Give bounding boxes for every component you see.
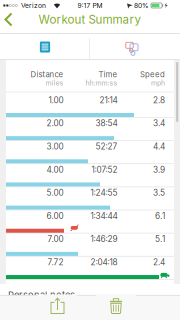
staticText: miles [45,79,63,87]
staticText: Personal notes [8,290,75,301]
staticText: 4.4 [153,141,165,151]
staticText: Verizon [21,1,46,10]
staticText: 7.00 [47,234,63,244]
staticText: 7.72 [47,257,63,267]
button[interactable]: Splits [1,34,89,59]
staticText: 3.5 [153,188,165,198]
staticText: 80% [134,1,149,10]
staticText: 5.00 [46,188,63,198]
staticText: Time [98,70,117,79]
staticText: 2:04:18 [90,257,117,267]
staticText: mph [151,79,165,87]
staticText: 3.9 [153,165,165,175]
staticText: 6.1 [155,211,165,221]
staticText: 21:14 [99,95,117,105]
staticText: 3.4 [153,118,165,128]
button[interactable]: Back [0,7,24,31]
staticText: 1:24:55 [90,188,117,198]
staticText: 1:34:44 [90,211,117,221]
button[interactable]: Compare workouts [90,34,180,59]
staticText: 2.4 [153,257,165,267]
staticText: 1:46:29 [90,234,117,244]
staticText: 52:27 [95,141,117,151]
staticText: 3.00 [46,141,63,151]
staticText: 4.00 [46,165,63,175]
staticText: Distance [30,70,63,79]
staticText: 1:07:52 [91,165,117,175]
button[interactable]: Delete [96,294,136,318]
staticText: 1.00 [48,95,63,105]
staticText: hh:mm:ss [85,79,117,87]
staticText: Speed [140,70,165,79]
staticText: 2.8 [153,95,165,105]
staticText: 9:17 PM [77,1,102,10]
staticText: 2.00 [46,118,63,128]
staticText: 5.1 [155,234,165,244]
staticText: 6.00 [46,211,63,221]
button[interactable]: Share [37,294,77,318]
staticText: Workout Summary [38,12,141,26]
staticText: 38:54 [95,118,117,128]
